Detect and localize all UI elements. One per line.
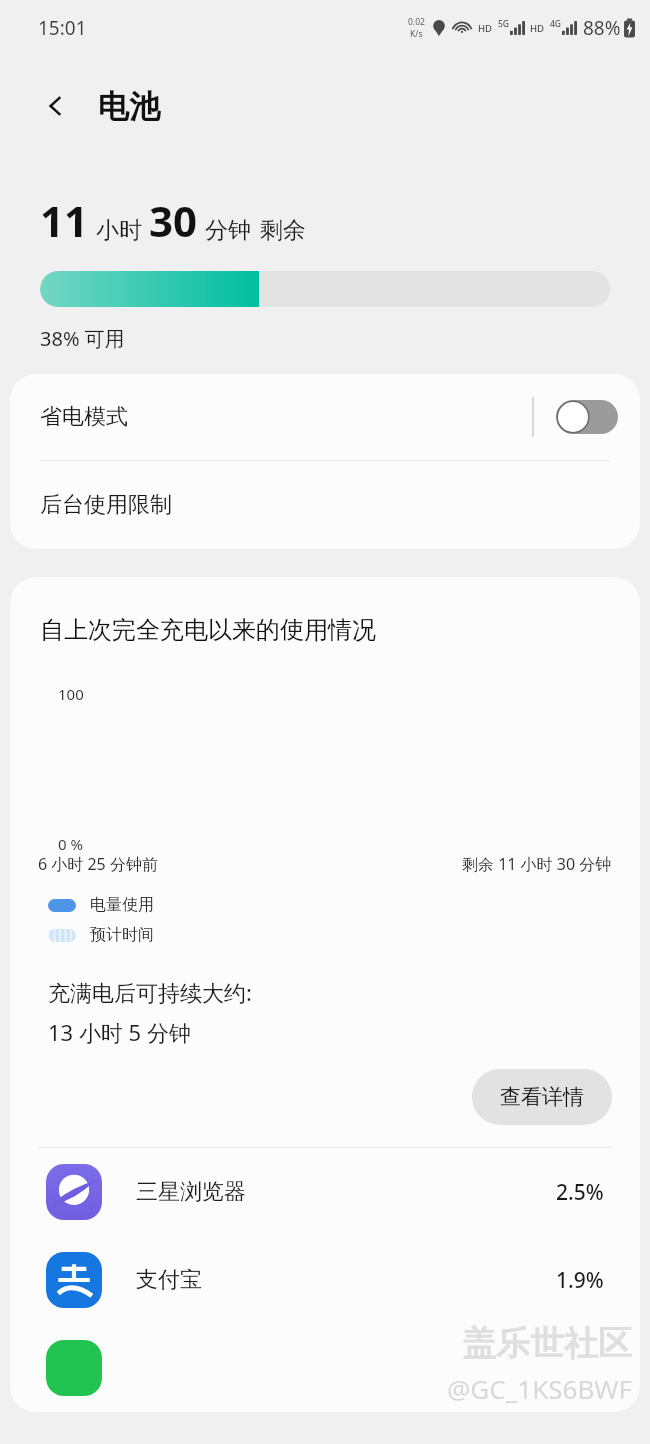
staticText: 后台使用限制 [40, 491, 172, 519]
staticText: 0.02 [408, 16, 425, 28]
button[interactable]: 查看详情 [472, 1069, 612, 1125]
staticText: 13 小时 5 分钟 [48, 1017, 191, 1047]
staticText: HD [478, 22, 493, 35]
button[interactable]: 省电模式 [10, 374, 640, 460]
staticText: HD [530, 22, 545, 35]
button[interactable]: 支付宝 [10, 1236, 640, 1324]
staticText: 38% 可用 [40, 325, 125, 352]
staticText: 充满电后可持续大约: [48, 977, 252, 1007]
staticText: 预计时间 [90, 925, 154, 945]
staticText: 88% [583, 15, 621, 41]
button[interactable]: Back [30, 80, 82, 132]
staticText: 自上次完全充电以来的使用情况 [40, 615, 376, 645]
button[interactable]: 后台使用限制 [10, 461, 640, 549]
staticText: 电池 [98, 87, 160, 126]
staticText: 30 [149, 192, 198, 249]
staticText: @GC_1KS6BWF [447, 1371, 632, 1406]
staticText: 15:01 [38, 15, 87, 41]
staticText: 4G [550, 18, 562, 30]
staticText: 小时 [96, 216, 142, 245]
staticText: 2.5% [556, 1178, 604, 1207]
staticText: 剩余 [260, 216, 306, 245]
staticText: 6 小时 25 分钟前 [38, 853, 158, 875]
staticText: 5G [498, 18, 510, 30]
staticText: 盖乐世社区 [462, 1322, 632, 1365]
staticText: 支付宝 [136, 1266, 202, 1294]
button[interactable]: Power saving toggle [556, 400, 618, 434]
staticText: K/s [410, 28, 423, 40]
staticText: 0 % [58, 834, 83, 854]
button[interactable]: 三星浏览器 [10, 1148, 640, 1236]
staticText: 11 [40, 192, 89, 249]
staticText: 查看详情 [500, 1084, 584, 1110]
staticText: 分钟 [205, 216, 251, 245]
staticText: 省电模式 [40, 403, 128, 431]
staticText: 电量使用 [90, 895, 154, 915]
staticText: 三星浏览器 [136, 1178, 246, 1206]
staticText: 1.9% [556, 1266, 604, 1295]
staticText: 剩余 11 小时 30 分钟 [462, 853, 612, 875]
button[interactable] [10, 1324, 640, 1412]
staticText: 100 [58, 684, 84, 704]
